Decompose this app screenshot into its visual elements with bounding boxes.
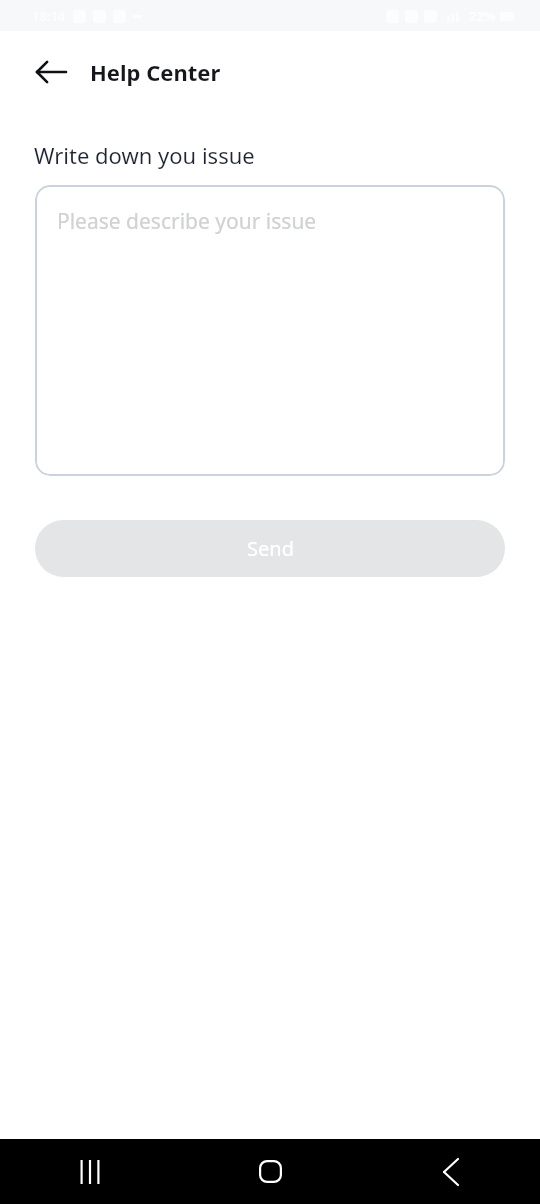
button[interactable]: Recents (0, 1139, 180, 1204)
button[interactable]: Please describe your issue (35, 185, 505, 476)
staticText: Please describe your issue (57, 207, 317, 236)
staticText: Send (247, 535, 294, 562)
button[interactable]: Send (35, 520, 505, 577)
button[interactable]: Back (24, 45, 78, 99)
button[interactable]: Home (180, 1139, 360, 1204)
staticText: Help Center (90, 57, 221, 87)
button[interactable]: Back (360, 1139, 540, 1204)
staticText: Write down you issue (34, 140, 255, 170)
